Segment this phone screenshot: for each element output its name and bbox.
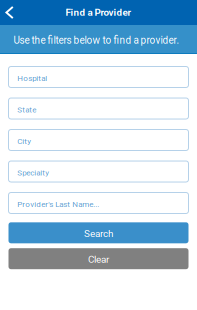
- staticText: Provider's Last Name...: [17, 199, 99, 209]
- button[interactable]: Search: [8, 222, 188, 243]
- staticText: State: [17, 105, 36, 114]
- button[interactable]: Specialty: [8, 161, 188, 182]
- staticText: Clear: [88, 254, 109, 265]
- button[interactable]: Provider's Last Name...: [8, 192, 188, 213]
- staticText: Find a Provider: [65, 7, 131, 18]
- button[interactable]: Back: [0, 0, 23, 25]
- staticText: City: [17, 136, 31, 146]
- staticText: Hospital: [17, 73, 47, 83]
- button[interactable]: Hospital: [8, 66, 188, 87]
- staticText: Use the filters below to find a provider…: [13, 34, 179, 46]
- staticText: Search: [84, 228, 113, 239]
- button[interactable]: Clear: [8, 248, 188, 269]
- staticText: Specialty: [17, 168, 49, 177]
- button[interactable]: State: [8, 98, 188, 119]
- button[interactable]: City: [8, 129, 188, 150]
